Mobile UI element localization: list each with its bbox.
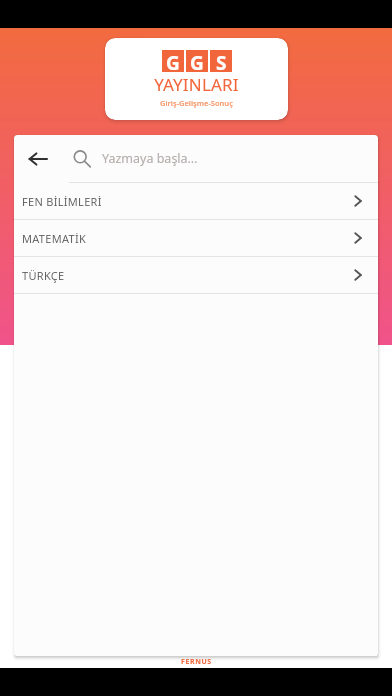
button[interactable]: Search <box>62 139 102 179</box>
staticText: TÜRKÇE <box>22 268 350 283</box>
button[interactable]: G <box>105 38 288 120</box>
staticText: YAYINLARI <box>154 73 239 96</box>
button[interactable]: Yazmaya başla… <box>102 135 378 182</box>
staticText: FEN BİLİMLERİ <box>22 194 350 209</box>
button[interactable]: Back <box>14 135 62 182</box>
button[interactable]: FEN BİLİMLERİ <box>14 183 378 219</box>
staticText: G <box>190 50 204 72</box>
button[interactable]: MATEMATİK <box>14 220 378 256</box>
staticText: Yazmaya başla… <box>102 150 198 167</box>
staticText: S <box>216 50 227 72</box>
staticText: Giriş-Gelişme-Sonuç <box>160 98 233 108</box>
staticText: G <box>166 50 180 72</box>
button[interactable]: TÜRKÇE <box>14 257 378 293</box>
staticText: MATEMATİK <box>22 231 350 246</box>
staticText: FERNUS <box>181 657 212 667</box>
